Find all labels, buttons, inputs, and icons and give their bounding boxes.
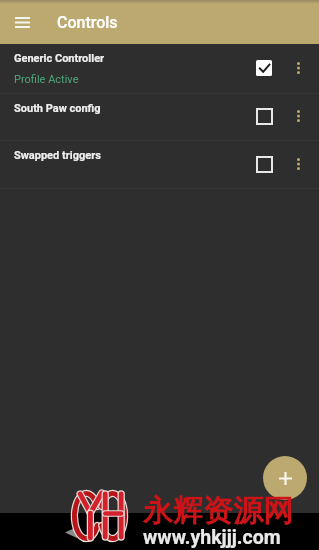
button[interactable]: More options for Generic Controller xyxy=(283,53,313,83)
button[interactable]: Back xyxy=(56,517,86,547)
button[interactable]: Open navigation menu xyxy=(0,0,44,44)
button[interactable]: Generic Controller xyxy=(0,44,319,93)
button[interactable]: Toggle Generic Controller xyxy=(245,49,283,87)
button[interactable]: More options for Swapped triggers xyxy=(283,149,313,179)
staticText: Controls xyxy=(57,13,118,32)
staticText: Generic Controller xyxy=(14,52,105,65)
button[interactable]: Toggle Swapped triggers xyxy=(245,145,283,183)
button[interactable]: More options for South Paw config xyxy=(283,101,313,131)
staticText: 永辉资源网 xyxy=(143,492,293,530)
button[interactable]: Add controller profile xyxy=(263,456,307,500)
button[interactable]: South Paw config xyxy=(0,94,319,140)
staticText: South Paw config xyxy=(14,102,101,115)
staticText: Swapped triggers xyxy=(14,149,101,162)
staticText: www.yhkjjj.com xyxy=(143,526,281,549)
staticText: Profile Active xyxy=(14,73,79,86)
button[interactable]: Toggle South Paw config xyxy=(245,97,283,135)
button[interactable]: Swapped triggers xyxy=(0,141,319,188)
